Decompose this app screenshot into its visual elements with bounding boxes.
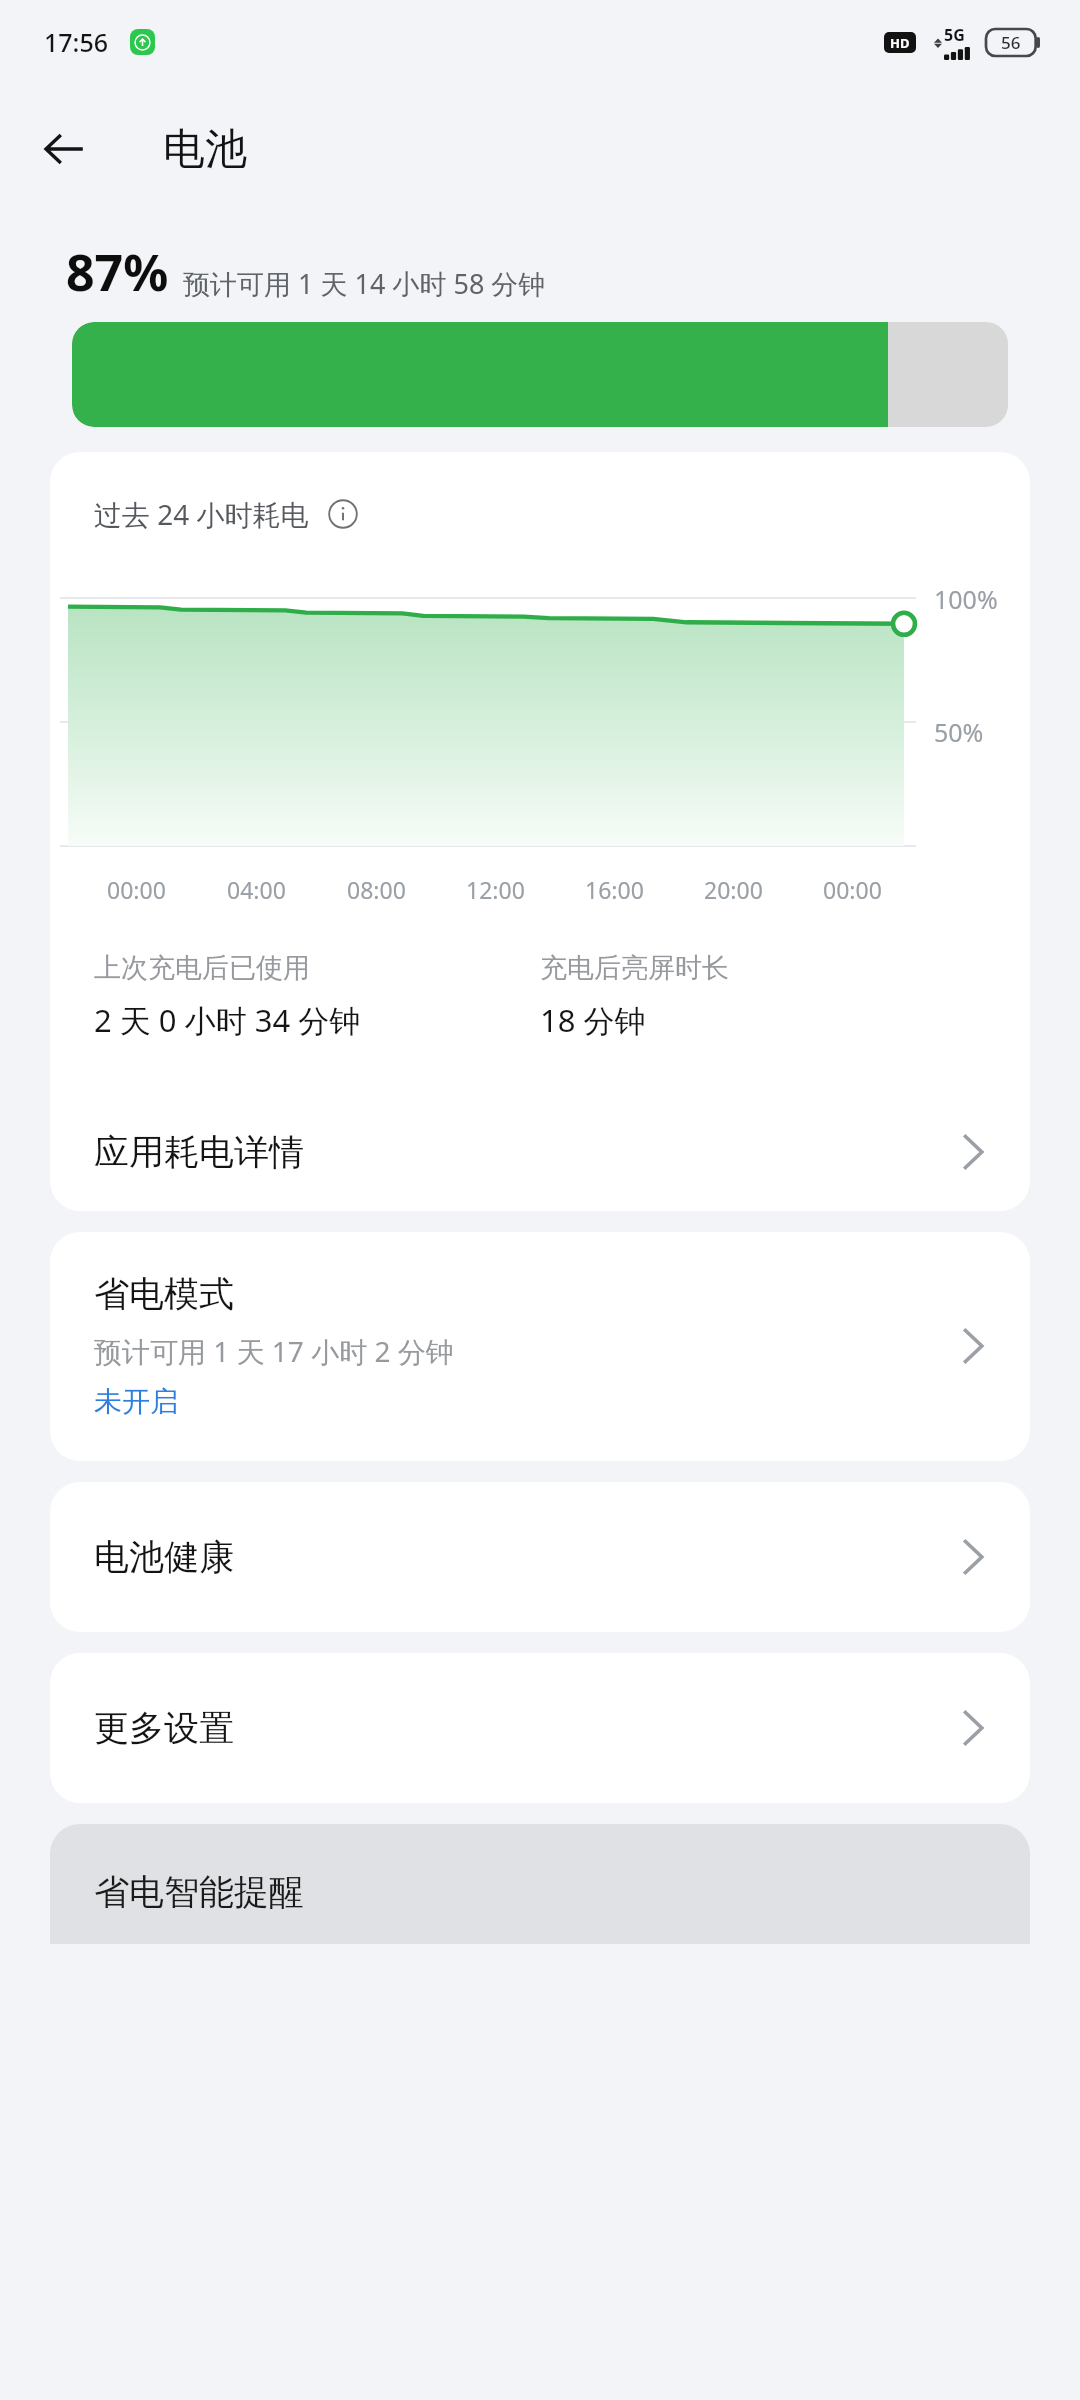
staticText: 5G bbox=[944, 24, 965, 46]
staticText: 省电智能提醒 bbox=[94, 1870, 304, 1914]
staticText: 省电模式 bbox=[94, 1272, 234, 1316]
staticText: 50% bbox=[934, 715, 984, 749]
staticText: 17:56 bbox=[44, 25, 109, 59]
staticText: 电池 bbox=[163, 123, 247, 176]
staticText: 预计可用 1 天 17 小时 2 分钟 bbox=[94, 1332, 454, 1370]
other: 进入 bbox=[960, 1535, 986, 1579]
other: 进入 bbox=[960, 1324, 986, 1368]
staticText: 过去 24 小时耗电 bbox=[94, 495, 309, 533]
staticText: 充电后亮屏时长 bbox=[540, 951, 729, 985]
staticText: 16:00 bbox=[585, 874, 644, 905]
staticText: 更多设置 bbox=[94, 1706, 234, 1750]
button[interactable]: 更多设置 bbox=[50, 1653, 1030, 1803]
button[interactable]: 应用耗电详情 bbox=[50, 1093, 1030, 1211]
button[interactable]: 省电智能提醒 bbox=[50, 1824, 1030, 1944]
staticText: 04:00 bbox=[227, 874, 286, 905]
button[interactable]: 返回 bbox=[22, 107, 106, 191]
staticText: 应用耗电详情 bbox=[94, 1130, 304, 1174]
staticText: 00:00 bbox=[823, 874, 882, 905]
staticText: 20:00 bbox=[704, 874, 763, 905]
staticText: 未开启 bbox=[94, 1384, 178, 1419]
staticText: 56 bbox=[1001, 31, 1021, 54]
staticText: 18 分钟 bbox=[540, 999, 646, 1041]
staticText: 上次充电后已使用 bbox=[94, 951, 310, 985]
staticText: 87% bbox=[66, 238, 169, 306]
staticText: 2 天 0 小时 34 分钟 bbox=[94, 999, 361, 1041]
other: 进入 bbox=[960, 1706, 986, 1750]
staticText: 12:00 bbox=[466, 874, 525, 905]
staticText: 100% bbox=[934, 582, 998, 616]
staticText: HD bbox=[890, 34, 910, 52]
button[interactable]: 说明 bbox=[323, 494, 363, 534]
staticText: 预计可用 1 天 14 小时 58 分钟 bbox=[183, 265, 546, 302]
other: 进入 bbox=[960, 1130, 986, 1174]
staticText: 08:00 bbox=[347, 874, 406, 905]
staticText: 00:00 bbox=[107, 874, 166, 905]
staticText: 电池健康 bbox=[94, 1535, 234, 1579]
button[interactable]: 电池健康 bbox=[50, 1482, 1030, 1632]
button[interactable]: 省电模式 bbox=[50, 1232, 1030, 1461]
